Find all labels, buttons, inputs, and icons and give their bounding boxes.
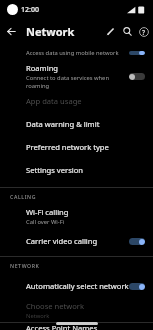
button[interactable]: Roaming: [0, 63, 153, 89]
staticText: NETWORK: [10, 262, 40, 269]
button[interactable]: Preferred network type: [0, 135, 153, 158]
button[interactable]: Choose network: [0, 298, 153, 322]
button[interactable]: Toggle on: [129, 236, 145, 246]
staticText: Automatically select network: [26, 281, 129, 291]
button[interactable]: Access Point Names: [0, 323, 153, 330]
button[interactable]: App data usage: [0, 89, 153, 112]
staticText: Network: [26, 312, 50, 320]
button[interactable]: Edit: [102, 23, 119, 40]
staticText: Access Point Names: [26, 323, 98, 330]
staticText: Call over Wi-Fi: [26, 218, 65, 226]
staticText: Connect to data services when roaming: [26, 74, 129, 89]
button[interactable]: Settings version: [0, 158, 153, 182]
staticText: Wi-Fi calling: [26, 207, 69, 217]
staticText: Carrier video calling: [26, 236, 98, 246]
staticText: ?: [142, 28, 146, 37]
staticText: Data warning & limit: [26, 119, 100, 129]
staticText: Choose network: [26, 301, 85, 311]
staticText: CALLING: [10, 193, 37, 200]
staticText: Settings version: [26, 165, 84, 175]
button[interactable]: Access data using mobile network: [0, 43, 153, 63]
staticText: Roaming: [26, 63, 58, 73]
staticText: 12:00: [21, 5, 39, 15]
button[interactable]: Toggle on: [129, 281, 145, 291]
button[interactable]: Search: [119, 23, 136, 40]
staticText: Preferred network type: [26, 142, 109, 152]
staticText: Access data using mobile network: [26, 49, 119, 57]
button[interactable]: Toggle off: [129, 71, 145, 81]
button[interactable]: Data warning & limit: [0, 112, 153, 135]
button[interactable]: Wi-Fi calling: [0, 204, 153, 229]
button[interactable]: Back: [3, 23, 19, 39]
button[interactable]: Carrier video calling: [0, 229, 153, 253]
button[interactable]: Toggle on: [129, 51, 145, 55]
staticText: Network: [26, 24, 75, 39]
button[interactable]: Automatically select network: [0, 273, 153, 298]
staticText: App data usage: [26, 96, 82, 106]
button[interactable]: Help: [136, 23, 152, 40]
